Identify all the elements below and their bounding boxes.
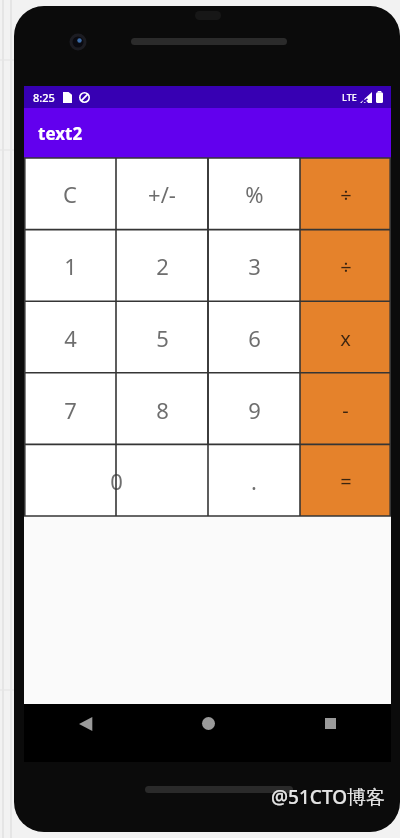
staticText: +/- — [148, 179, 176, 209]
staticText: C — [63, 179, 77, 209]
staticText: x — [340, 325, 351, 352]
button[interactable]: ÷ — [300, 230, 391, 302]
button[interactable]: Back — [24, 704, 147, 762]
staticText: LTE — [342, 91, 357, 103]
button[interactable]: - — [300, 374, 391, 446]
button[interactable]: ÷ — [300, 158, 391, 230]
staticText: 8:25 — [33, 90, 55, 105]
button[interactable]: x — [300, 302, 391, 374]
staticText: . — [251, 466, 257, 496]
staticText: ÷ — [340, 181, 352, 208]
button[interactable]: 1 — [24, 230, 116, 302]
button[interactable]: 6 — [208, 302, 300, 374]
button[interactable]: 5 — [116, 302, 208, 374]
staticText: 2 — [156, 251, 169, 281]
button[interactable]: = — [300, 446, 391, 516]
button[interactable]: % — [208, 158, 300, 230]
button[interactable]: +/- — [116, 158, 208, 230]
button[interactable]: Recent apps — [269, 704, 391, 762]
staticText: 3 — [248, 251, 261, 281]
staticText: @51CTO博客 — [271, 784, 386, 810]
button[interactable]: 9 — [208, 374, 300, 446]
staticText: 0 — [110, 466, 123, 496]
button[interactable]: 4 — [24, 302, 116, 374]
button[interactable]: 0 — [24, 446, 208, 516]
staticText: % — [245, 179, 264, 209]
staticText: = — [340, 468, 352, 495]
button[interactable]: 2 — [116, 230, 208, 302]
staticText: ÷ — [340, 253, 352, 280]
button[interactable]: 7 — [24, 374, 116, 446]
button[interactable]: . — [208, 446, 300, 516]
staticText: 9 — [248, 395, 261, 425]
staticText: - — [342, 397, 349, 424]
button[interactable]: 8 — [116, 374, 208, 446]
button[interactable]: Home — [147, 704, 269, 762]
button[interactable]: C — [24, 158, 116, 230]
staticText: 8 — [156, 395, 169, 425]
staticText: 7 — [64, 395, 77, 425]
staticText: text2 — [38, 122, 83, 145]
staticText: 6 — [248, 323, 261, 353]
staticText: 5 — [156, 323, 169, 353]
staticText: 1 — [64, 251, 77, 281]
staticText: 4 — [64, 323, 77, 353]
button[interactable]: 3 — [208, 230, 300, 302]
